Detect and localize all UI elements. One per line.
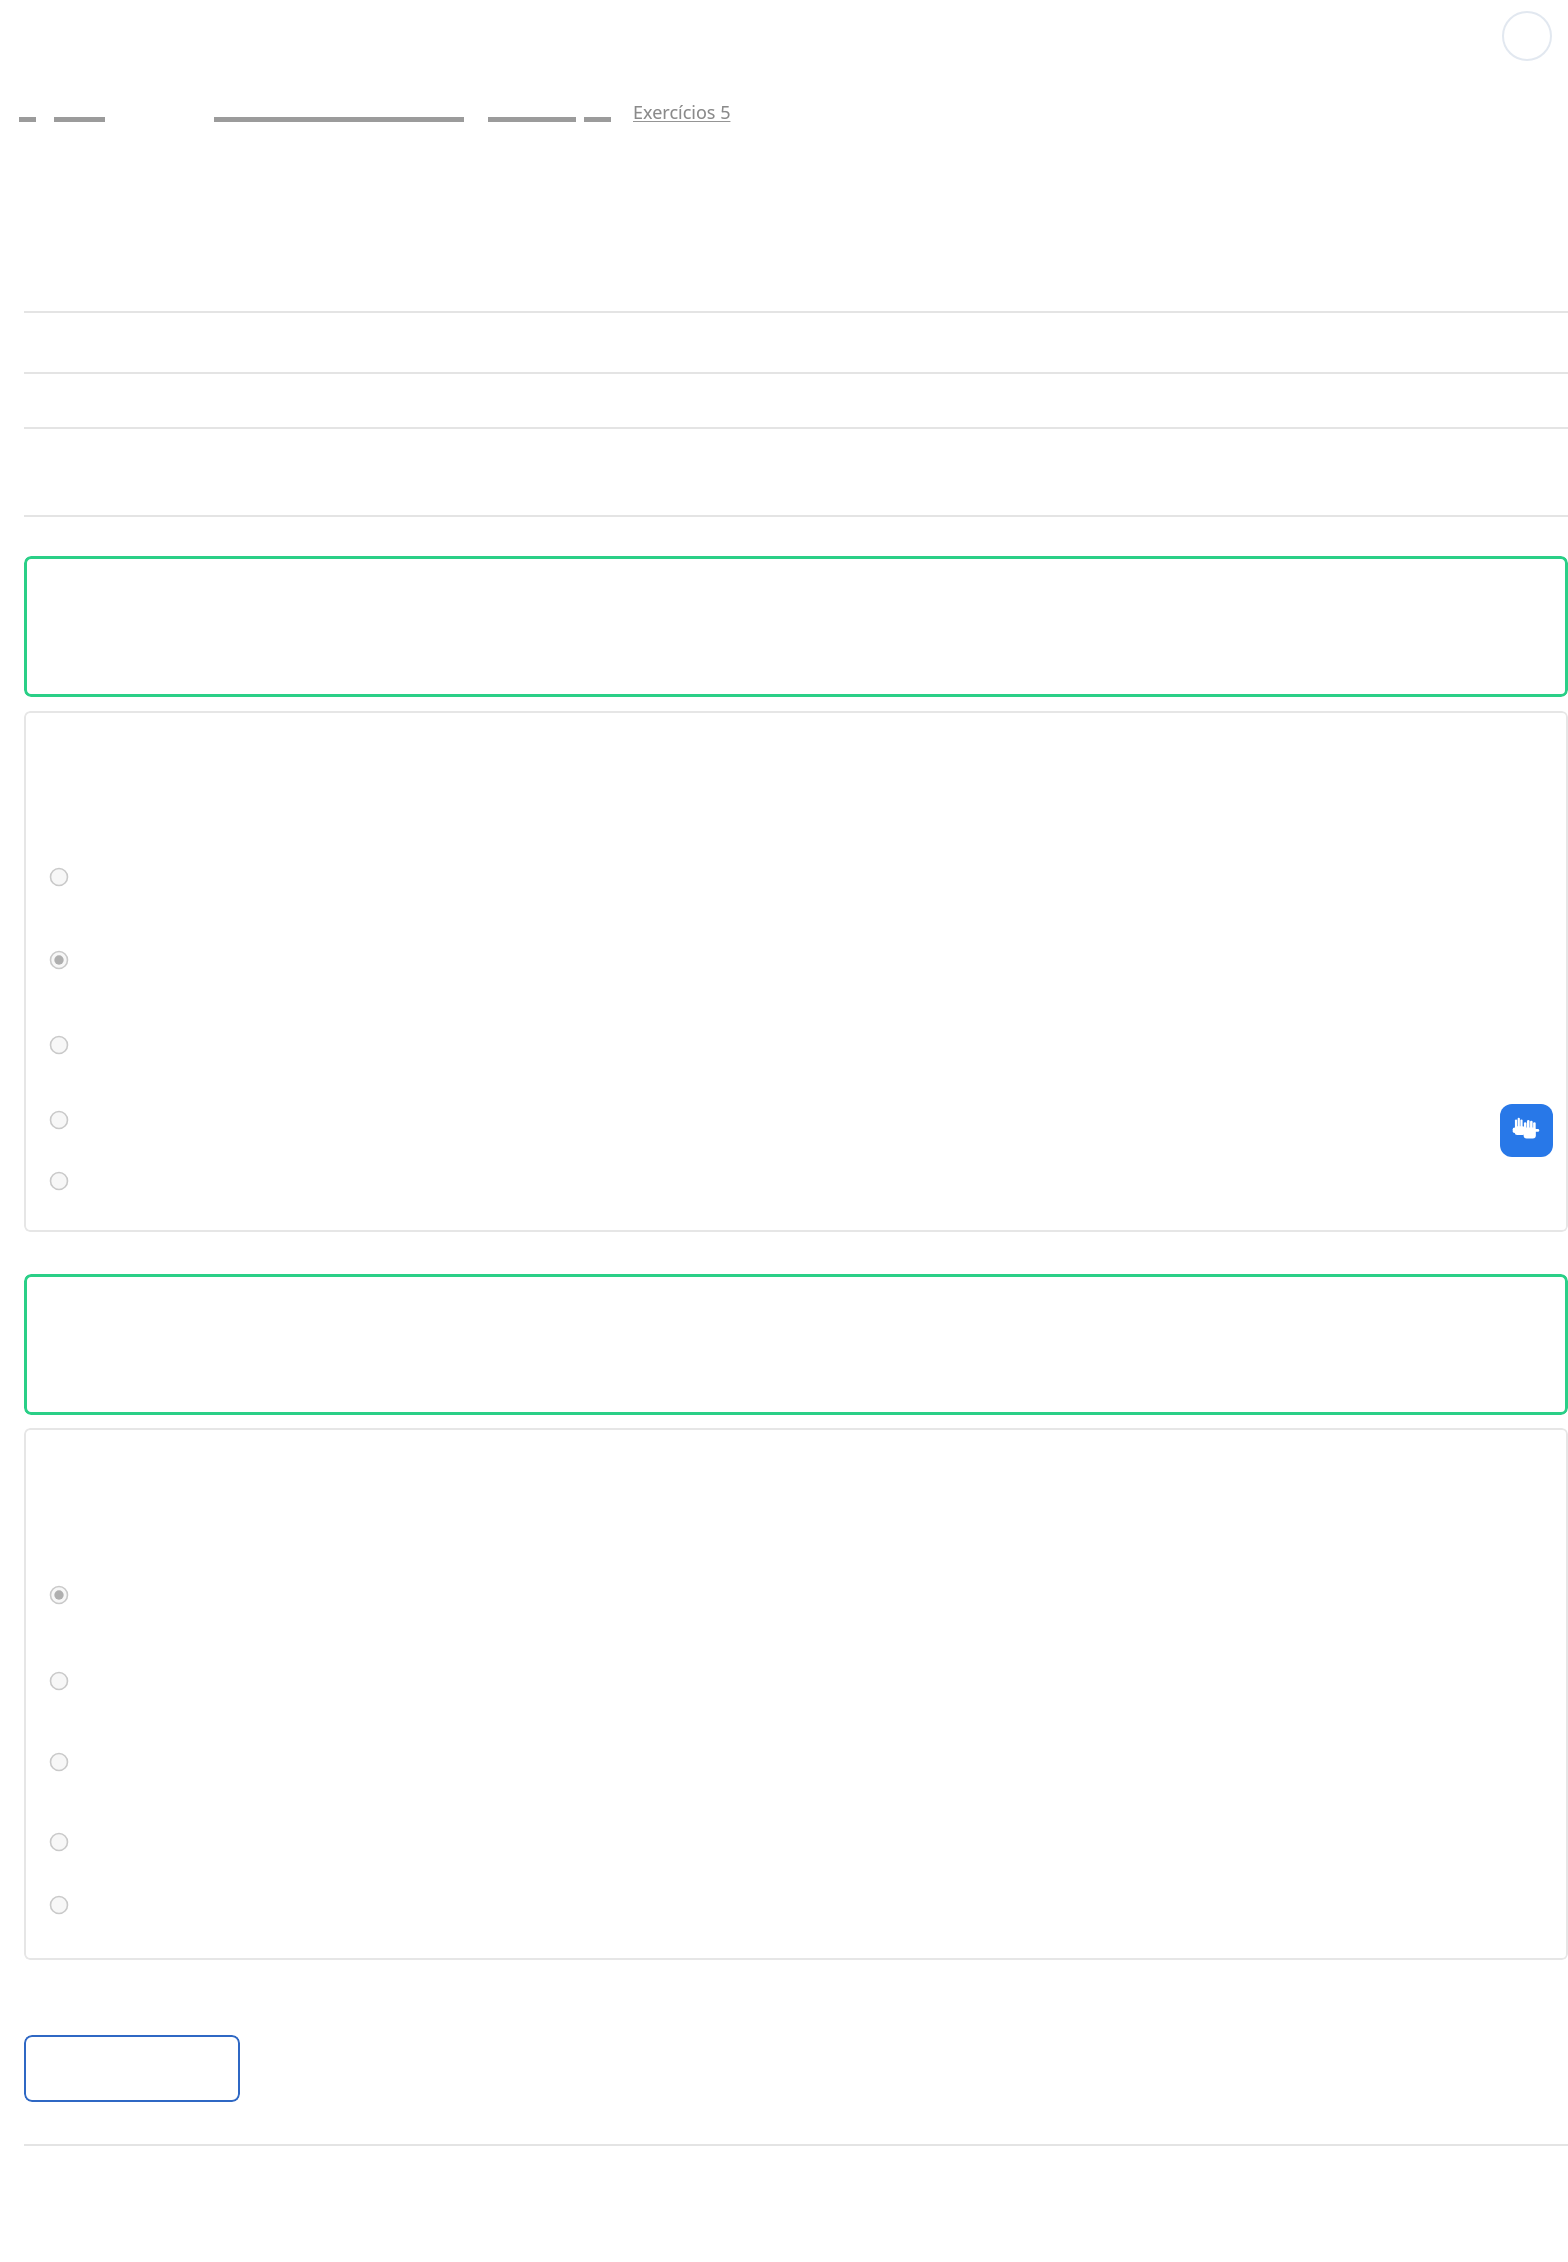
other: Loading — [1502, 11, 1552, 61]
button[interactable] — [48, 1579, 1508, 1611]
button[interactable]: VLibras acessibilidade — [1500, 1104, 1553, 1157]
button[interactable] — [48, 1104, 1508, 1136]
button[interactable] — [24, 556, 1568, 697]
button[interactable]: Exercícios 5 — [633, 107, 731, 132]
button[interactable]: Enviar — [24, 2035, 240, 2102]
button[interactable] — [48, 944, 1508, 976]
staticText: Exercícios 5 — [633, 100, 731, 125]
button[interactable] — [24, 1274, 1568, 1415]
